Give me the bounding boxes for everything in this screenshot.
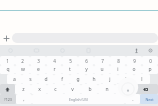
button[interactable]: j <box>102 74 118 84</box>
staticText: x <box>38 86 41 93</box>
button[interactable]: 7 <box>94 56 110 65</box>
button[interactable]: v <box>64 84 81 94</box>
button[interactable]: Settings <box>143 45 157 56</box>
staticText: 0 <box>149 58 152 64</box>
button[interactable]: i <box>110 65 126 74</box>
button[interactable]: c <box>47 84 64 94</box>
staticText: 1 <box>6 58 9 64</box>
button[interactable]: l <box>134 74 150 84</box>
staticText: , <box>23 96 25 103</box>
button[interactable]: e <box>30 65 46 74</box>
staticText: b <box>88 86 92 93</box>
staticText: 3 <box>37 58 40 64</box>
button[interactable]: Backspace <box>132 84 158 94</box>
staticText: ?123 <box>4 97 12 102</box>
staticText: t <box>69 66 71 73</box>
button[interactable]: 5 <box>62 56 78 65</box>
button[interactable]: 2 <box>15 56 30 65</box>
button[interactable]: 1 <box>0 56 15 65</box>
button[interactable]: a <box>7 74 22 84</box>
button[interactable]: , <box>16 94 32 104</box>
staticText: 6 <box>85 58 88 64</box>
button[interactable]: Add attachment <box>0 33 12 43</box>
button[interactable]: 6 <box>78 56 94 65</box>
staticText: z <box>22 86 25 93</box>
button[interactable]: Next <box>140 94 158 104</box>
staticText: e <box>37 66 40 73</box>
button[interactable]: s <box>22 74 38 84</box>
button[interactable]: d <box>38 74 54 84</box>
button[interactable]: b <box>81 84 98 94</box>
button[interactable]: h <box>86 74 102 84</box>
staticText: 7 <box>101 58 104 64</box>
staticText: g <box>76 76 80 83</box>
staticText: a <box>13 76 16 83</box>
staticText: English (US) <box>69 97 88 102</box>
button[interactable]: . <box>125 94 140 104</box>
button[interactable]: Voice input <box>130 45 143 56</box>
staticText: w <box>21 66 25 73</box>
staticText: l <box>141 76 143 83</box>
staticText: j <box>109 76 111 83</box>
button[interactable]: x <box>31 84 47 94</box>
staticText: f <box>61 76 63 83</box>
staticText: i <box>117 66 119 73</box>
button[interactable]: y <box>78 65 94 74</box>
button[interactable]: g <box>70 74 86 84</box>
button[interactable]: u <box>94 65 110 74</box>
button[interactable]: m <box>115 84 132 94</box>
staticText: 9 <box>133 58 136 64</box>
staticText: y <box>85 66 88 73</box>
staticText: r <box>53 66 56 73</box>
button[interactable]: k <box>118 74 134 84</box>
button[interactable]: 0 <box>142 56 158 65</box>
staticText: q <box>6 66 10 73</box>
button[interactable]: 9 <box>126 56 142 65</box>
button[interactable]: n <box>98 84 115 94</box>
button[interactable]: w <box>15 65 30 74</box>
button[interactable]: p <box>142 65 158 74</box>
button[interactable]: 3 <box>30 56 46 65</box>
staticText: . <box>132 96 134 103</box>
staticText: 8 <box>117 58 120 64</box>
staticText: k <box>125 76 128 83</box>
staticText: 5 <box>69 58 72 64</box>
staticText: h <box>92 76 96 83</box>
button[interactable]: Shift <box>0 84 15 94</box>
staticText: p <box>148 66 152 73</box>
staticText: s <box>29 76 32 83</box>
staticText: d <box>44 76 48 83</box>
button[interactable]: English (US) <box>32 94 125 104</box>
button[interactable]: t <box>62 65 78 74</box>
button[interactable]: f <box>54 74 70 84</box>
button[interactable]: z <box>15 84 31 94</box>
staticText: Next <box>145 97 154 102</box>
button[interactable]: 4 <box>46 56 62 65</box>
button[interactable]: r <box>46 65 62 74</box>
staticText: v <box>71 86 74 93</box>
staticText: u <box>100 66 104 73</box>
button[interactable]: o <box>126 65 142 74</box>
button[interactable]: q <box>0 65 15 74</box>
button[interactable]: 8 <box>110 56 126 65</box>
staticText: c <box>54 86 57 93</box>
button[interactable]: ?123 <box>0 94 16 104</box>
staticText: n <box>105 86 109 93</box>
staticText: 4 <box>53 58 56 64</box>
staticText: 2 <box>21 58 24 64</box>
staticText: o <box>132 66 136 73</box>
